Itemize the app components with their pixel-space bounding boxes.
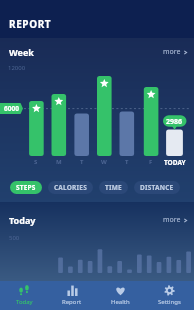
button[interactable]: DISTANCE	[134, 181, 180, 194]
staticText: TIME	[105, 183, 122, 192]
staticText: S	[34, 158, 38, 166]
button[interactable]: Health	[96, 281, 145, 310]
button[interactable]: CALORIES	[48, 181, 93, 194]
staticText: Week	[9, 46, 34, 58]
button[interactable]: more	[157, 47, 194, 57]
staticText: F	[149, 158, 153, 166]
staticText: W	[101, 158, 107, 166]
staticText: Today	[9, 214, 36, 226]
staticText: CALORIES	[54, 183, 87, 192]
staticText: Today	[16, 298, 33, 306]
staticText: STEPS	[16, 183, 36, 192]
staticText: M	[56, 158, 62, 166]
staticText: 6000	[4, 104, 19, 113]
button[interactable]: Report	[48, 281, 96, 310]
staticText: 2986	[166, 117, 183, 127]
button[interactable]: more	[157, 215, 194, 225]
button[interactable]: STEPS	[10, 181, 42, 194]
staticText: Report	[62, 298, 82, 306]
staticText: Health	[111, 298, 130, 306]
staticText: T	[80, 158, 84, 166]
staticText: more	[163, 215, 181, 225]
staticText: REPORT	[9, 17, 52, 31]
staticText: 12000	[8, 64, 26, 72]
button[interactable]: Today	[0, 281, 48, 310]
staticText: Settings	[158, 298, 181, 306]
staticText: DISTANCE	[140, 183, 174, 192]
staticText: T	[125, 158, 129, 166]
staticText: TODAY	[164, 158, 186, 167]
staticText: 500	[9, 234, 20, 242]
staticText: more	[163, 47, 181, 57]
button[interactable]: Settings	[145, 281, 194, 310]
button[interactable]: TIME	[99, 181, 128, 194]
